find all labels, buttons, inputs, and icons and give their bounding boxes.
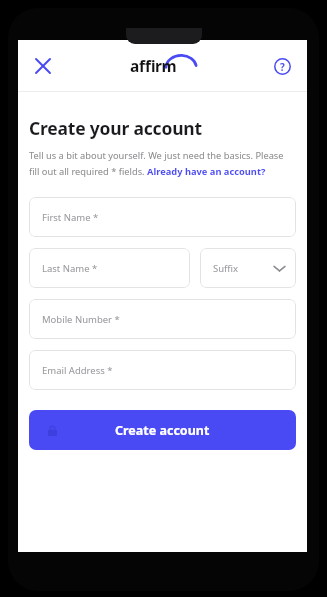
button[interactable]: First Name *: [29, 197, 296, 237]
staticText: affirm: [130, 55, 177, 76]
button[interactable]: Close: [23, 46, 63, 86]
button[interactable]: Mobile Number *: [29, 299, 296, 339]
button[interactable]: Last Name *: [29, 248, 190, 288]
staticText: Mobile Number *: [42, 313, 120, 326]
staticText: Create your account: [29, 116, 202, 140]
staticText: ?: [280, 60, 285, 74]
button[interactable]: Create account: [29, 410, 296, 450]
staticText: Suffix: [213, 262, 239, 275]
staticText: Tell us a bit about yourself. We just ne…: [29, 149, 296, 177]
button[interactable]: Suffix: [200, 248, 296, 288]
staticText: Email Address *: [42, 364, 113, 377]
staticText: Create account: [115, 422, 210, 439]
staticText: First Name *: [42, 211, 99, 224]
button[interactable]: Help: [262, 46, 302, 86]
staticText: Last Name *: [42, 262, 98, 275]
button[interactable]: Email Address *: [29, 350, 296, 390]
